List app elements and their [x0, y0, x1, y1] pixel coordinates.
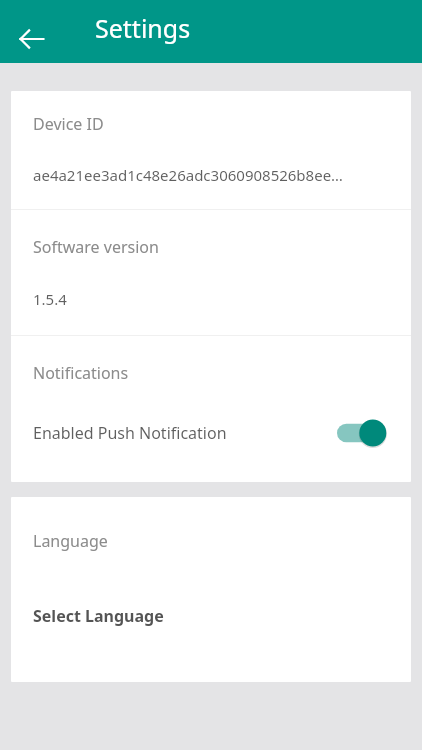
button[interactable]: Enabled Push Notification — [11, 406, 411, 460]
other: Enabled Push Notification toggle — [337, 418, 389, 448]
button[interactable]: Device ID — [11, 91, 411, 209]
staticText: Device ID — [33, 113, 104, 135]
button[interactable]: Language — [11, 497, 411, 682]
staticText: Notifications — [33, 362, 129, 384]
button[interactable]: Software version — [11, 210, 411, 335]
button[interactable]: Back — [8, 15, 56, 63]
staticText: 1.5.4 — [33, 289, 67, 309]
staticText: Settings — [95, 11, 191, 45]
staticText: Select Language — [33, 605, 164, 627]
staticText: ae4a21ee3ad1c48e26adc3060908526b8ee… — [33, 165, 343, 185]
staticText: Language — [33, 530, 108, 552]
staticText: Software version — [33, 236, 159, 258]
staticText: Enabled Push Notification — [33, 422, 227, 444]
